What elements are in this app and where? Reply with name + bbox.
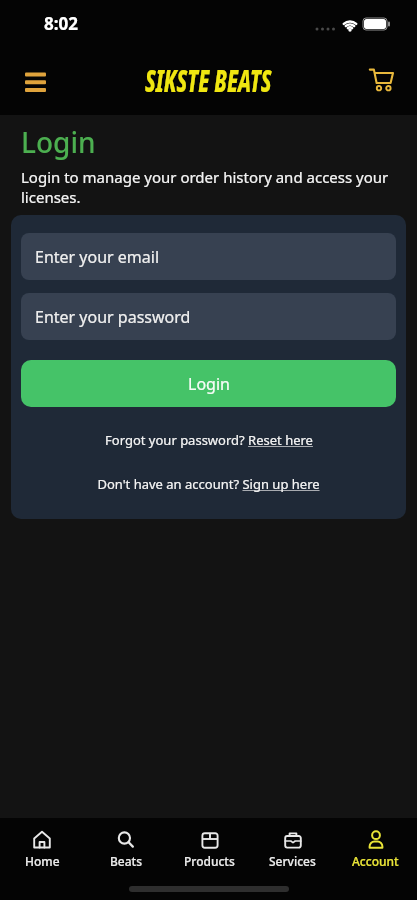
staticText: Login: [188, 373, 230, 395]
button[interactable]: Don't have an account? Sign up here: [21, 475, 396, 493]
button[interactable]: Beats: [84, 829, 168, 869]
button[interactable]: Products: [168, 829, 251, 869]
button[interactable]: Login: [21, 360, 396, 407]
staticText: Enter your email: [35, 246, 160, 268]
button[interactable]: [365, 63, 399, 97]
staticText: Don't have an account? Sign up here: [97, 475, 320, 493]
button[interactable]: Home: [0, 829, 84, 869]
staticText: Login: [21, 123, 96, 161]
button[interactable]: Enter your email: [21, 233, 396, 280]
button[interactable]: Enter your password: [21, 293, 396, 340]
staticText: Account: [352, 853, 399, 869]
staticText: Login to manage your order history and a…: [21, 167, 393, 207]
staticText: 8:02: [44, 12, 78, 35]
button[interactable]: Services: [251, 829, 334, 869]
staticText: Enter your password: [35, 306, 191, 328]
staticText: Forgot your password? Reset here: [105, 431, 313, 449]
staticText: Home: [25, 853, 60, 869]
staticText: Services: [269, 853, 316, 869]
staticText: Products: [184, 853, 235, 869]
staticText: SIKSTE BEATS: [145, 59, 272, 101]
button[interactable]: Account: [334, 829, 417, 869]
staticText: Beats: [110, 853, 143, 869]
button[interactable]: [18, 63, 52, 97]
button[interactable]: Forgot your password? Reset here: [21, 431, 396, 449]
